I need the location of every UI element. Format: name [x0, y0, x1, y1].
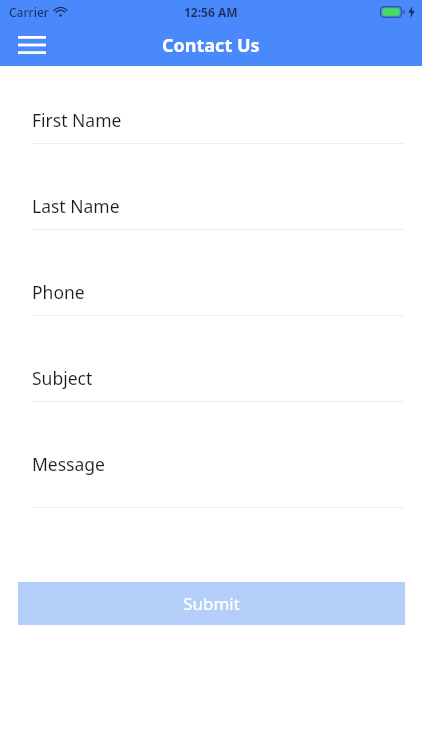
staticText: Last Name [32, 194, 120, 218]
button[interactable]: Last Name [0, 194, 422, 280]
staticText: Message [32, 452, 105, 476]
staticText: Carrier [9, 4, 49, 20]
button[interactable]: Subject [0, 366, 422, 452]
staticText: First Name [32, 108, 122, 132]
button[interactable]: Message [0, 452, 422, 558]
staticText: Submit [183, 592, 240, 615]
staticText: 12:56 AM [184, 4, 238, 20]
button[interactable]: Open navigation menu [8, 24, 56, 66]
staticText: Contact Us [162, 33, 260, 58]
button[interactable]: Phone [0, 280, 422, 366]
button[interactable]: First Name [0, 108, 422, 194]
staticText: Phone [32, 280, 85, 304]
button[interactable]: Submit [18, 582, 405, 625]
staticText: Subject [32, 366, 93, 390]
